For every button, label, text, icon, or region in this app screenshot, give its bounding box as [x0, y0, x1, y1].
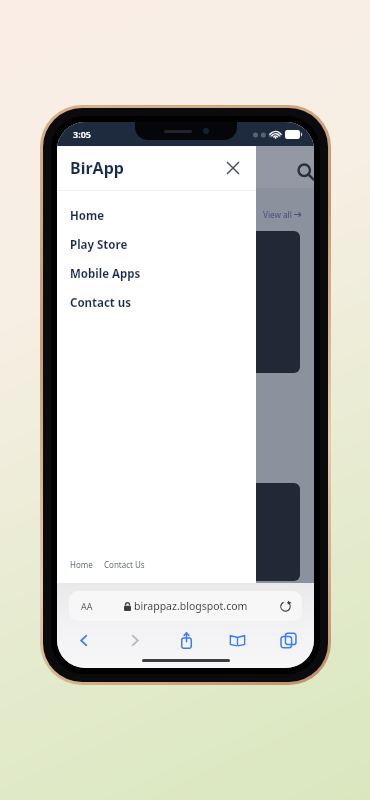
button[interactable]: View all — [263, 209, 301, 220]
button[interactable]: Reload — [279, 600, 292, 613]
button[interactable]: Forward — [109, 627, 161, 653]
button[interactable]: Share — [161, 627, 212, 653]
button[interactable]: AA — [69, 591, 302, 621]
button[interactable]: Mobile Apps — [57, 259, 256, 288]
staticText: Home — [70, 208, 105, 224]
button[interactable]: Home — [70, 559, 93, 570]
staticText: birappaz.blogspot.com — [134, 599, 248, 613]
button[interactable]: Play Store — [57, 230, 256, 259]
button[interactable]: Contact Us — [104, 559, 145, 570]
staticText: AA — [81, 600, 93, 612]
staticText: Play Store — [70, 237, 128, 253]
button[interactable]: Bookmarks — [212, 627, 263, 653]
button[interactable]: Back — [57, 627, 109, 653]
button[interactable]: Tabs — [263, 627, 314, 653]
staticText: Mobile Apps — [70, 266, 141, 282]
button[interactable]: Contact us — [57, 288, 256, 317]
button[interactable]: Home — [57, 201, 256, 230]
staticText: 3:05 — [73, 128, 91, 140]
button[interactable]: Search — [295, 161, 314, 183]
staticText: View all — [263, 209, 292, 220]
button[interactable]: Close menu — [222, 157, 244, 179]
button[interactable]: BirApp — [70, 157, 124, 179]
staticText: Contact us — [70, 295, 132, 311]
